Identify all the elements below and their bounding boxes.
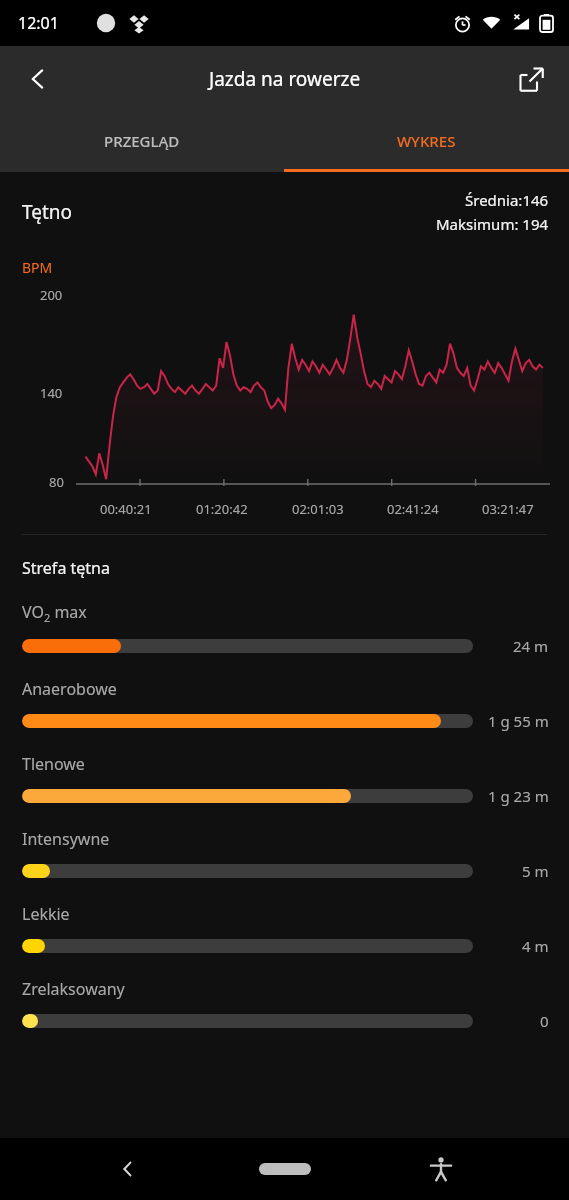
button[interactable]: Lekkie: [0, 903, 569, 978]
button[interactable]: Zrelaksowany: [0, 978, 569, 1053]
staticText: Anaerobowe: [22, 678, 117, 700]
button[interactable]: Share: [505, 53, 557, 105]
staticText: Jazda na rowerze: [209, 66, 361, 92]
staticText: 4 m: [522, 936, 549, 956]
staticText: 140: [40, 384, 63, 402]
staticText: 0: [540, 1011, 549, 1031]
staticText: 1 g 55 m: [488, 711, 549, 731]
staticText: Tętno: [22, 199, 73, 225]
button[interactable]: Back: [12, 53, 64, 105]
button[interactable]: Home: [250, 1154, 320, 1184]
staticText: BPM: [22, 258, 53, 277]
staticText: 80: [49, 473, 64, 491]
staticText: 02:41:24: [387, 500, 439, 518]
button[interactable]: WYKRES: [284, 112, 569, 169]
staticText: Średnia:146: [465, 190, 549, 210]
staticText: VO2 max: [22, 601, 87, 625]
staticText: 1 g 23 m: [488, 786, 549, 806]
staticText: Intensywne: [22, 828, 110, 850]
button[interactable]: PRZEGLĄD: [0, 112, 284, 169]
staticText: PRZEGLĄD: [104, 131, 180, 151]
staticText: 00:40:21: [100, 500, 152, 518]
button[interactable]: Back: [105, 1146, 151, 1192]
button[interactable]: Accessibility: [418, 1146, 464, 1192]
staticText: 24 m: [513, 636, 549, 656]
staticText: Tlenowe: [22, 753, 85, 775]
staticText: 01:20:42: [196, 500, 248, 518]
staticText: 12:01: [18, 12, 59, 34]
staticText: 5 m: [522, 861, 549, 881]
staticText: 02:01:03: [292, 500, 344, 518]
staticText: Zrelaksowany: [22, 978, 125, 1000]
button[interactable]: Tlenowe: [0, 753, 569, 828]
staticText: Lekkie: [22, 903, 70, 925]
staticText: 03:21:47: [482, 500, 534, 518]
button[interactable]: Anaerobowe: [0, 678, 569, 753]
staticText: Maksimum: 194: [436, 214, 549, 234]
button[interactable]: VO2 max: [0, 601, 569, 678]
button[interactable]: Intensywne: [0, 828, 569, 903]
staticText: Strefa tętna: [22, 557, 110, 579]
staticText: 200: [40, 286, 63, 304]
staticText: WYKRES: [397, 131, 456, 151]
